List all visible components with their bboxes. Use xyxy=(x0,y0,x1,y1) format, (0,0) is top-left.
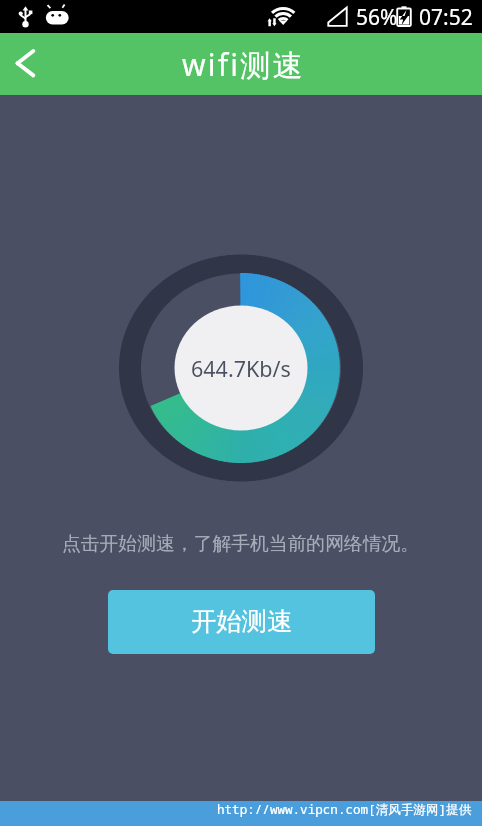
staticText: http://www.vipcn.com[清风手游网]提供 xyxy=(217,801,472,818)
staticText: 开始测速 xyxy=(191,606,293,638)
staticText: 56% xyxy=(356,3,398,32)
staticText: 点击开始测速，了解手机当前的网络情况。 xyxy=(62,532,420,556)
button[interactable]: 开始测速 xyxy=(108,590,375,654)
staticText: wifi测速 xyxy=(182,44,305,85)
button[interactable]: Back xyxy=(0,40,48,88)
staticText: 07:52 xyxy=(419,3,473,32)
staticText: 644.7Kb/s xyxy=(191,354,291,383)
